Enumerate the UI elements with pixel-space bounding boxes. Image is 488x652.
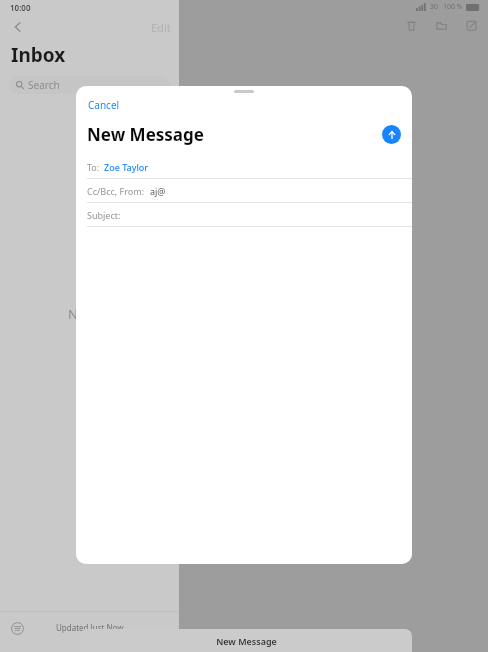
staticText: Inbox bbox=[11, 42, 66, 68]
staticText: Edit bbox=[151, 20, 171, 35]
staticText: 30 bbox=[430, 2, 439, 12]
button[interactable]: Edit bbox=[151, 20, 171, 35]
button[interactable]: Subject: bbox=[76, 203, 412, 226]
button[interactable]: Cc/Bcc, From: bbox=[76, 179, 412, 202]
staticText: Updated Just Now bbox=[56, 622, 124, 633]
button[interactable]: Search bbox=[9, 76, 170, 94]
staticText: New Message bbox=[216, 635, 277, 647]
staticText: Search bbox=[28, 78, 60, 92]
button[interactable]: Compose bbox=[462, 16, 480, 34]
button[interactable]: Back bbox=[6, 15, 30, 39]
staticText: Cc/Bcc, From: bbox=[87, 185, 145, 197]
staticText: New Message bbox=[87, 123, 204, 146]
button[interactable]: Cancel bbox=[88, 98, 120, 112]
staticText: Subject: bbox=[87, 209, 121, 221]
button[interactable]: Delete bbox=[402, 16, 420, 34]
staticText: 100 % bbox=[443, 2, 463, 12]
staticText: N bbox=[68, 305, 78, 323]
staticText: Cancel bbox=[88, 98, 120, 112]
staticText: aj@ bbox=[150, 185, 166, 197]
staticText: 10:00 bbox=[10, 2, 31, 13]
button[interactable]: Send bbox=[382, 125, 401, 144]
button[interactable]: Move to folder bbox=[432, 16, 450, 34]
button[interactable]: New Message bbox=[80, 629, 412, 652]
staticText: To: bbox=[87, 161, 100, 173]
button[interactable]: To: bbox=[76, 155, 412, 178]
staticText: Zoe Taylor bbox=[104, 161, 149, 173]
button[interactable]: Filter bbox=[7, 618, 27, 638]
